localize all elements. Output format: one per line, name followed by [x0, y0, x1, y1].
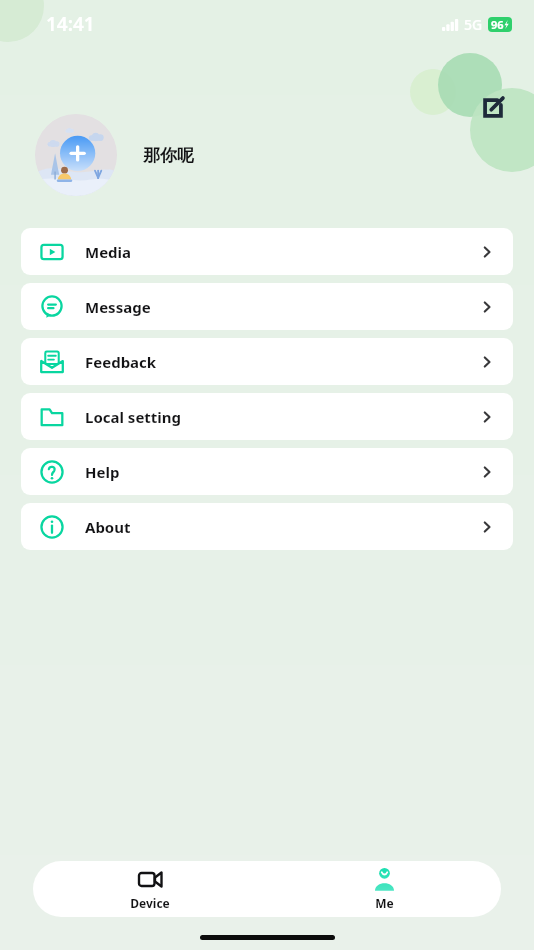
button[interactable]: Local setting: [21, 393, 513, 440]
button[interactable]: 那你呢: [35, 114, 194, 196]
button[interactable]: Device: [112, 863, 188, 915]
staticText: Help: [85, 462, 120, 482]
staticText: 5G: [464, 15, 483, 34]
staticText: 那你呢: [143, 145, 194, 166]
button[interactable]: Feedback: [21, 338, 513, 385]
staticText: 96: [491, 17, 504, 32]
staticText: Message: [85, 297, 151, 317]
staticText: Local setting: [85, 407, 182, 427]
staticText: Feedback: [85, 352, 157, 372]
staticText: Media: [85, 242, 132, 262]
staticText: Device: [130, 895, 170, 911]
staticText: 14:41: [46, 11, 95, 37]
button[interactable]: Media: [21, 228, 513, 275]
staticText: About: [85, 517, 131, 537]
button[interactable]: About: [21, 503, 513, 550]
staticText: Me: [375, 895, 394, 911]
button[interactable]: Me: [354, 863, 415, 915]
button[interactable]: Help: [21, 448, 513, 495]
button[interactable]: Edit profile: [477, 92, 509, 124]
button[interactable]: Message: [21, 283, 513, 330]
